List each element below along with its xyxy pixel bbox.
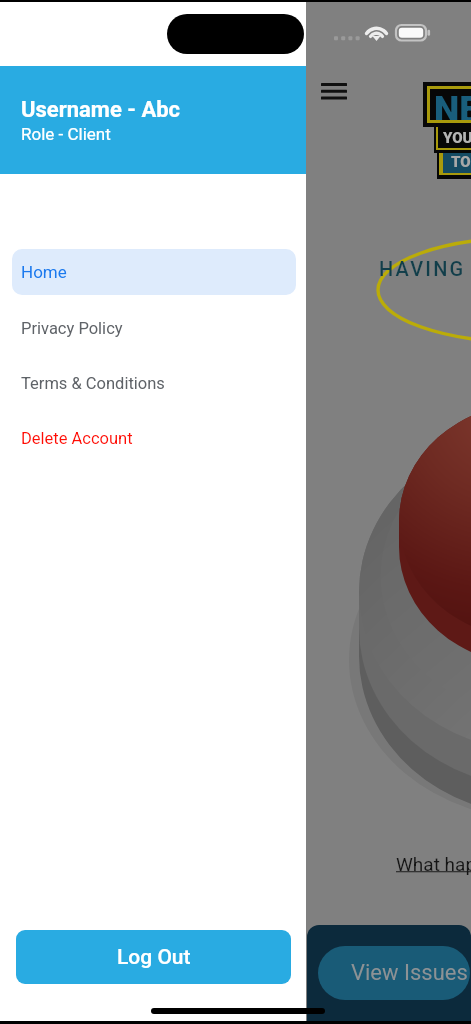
button[interactable]: Home [12, 249, 296, 295]
button[interactable]: Open navigation menu [316, 76, 352, 106]
staticText: Terms & Conditions [21, 374, 165, 393]
staticText: Role - Client [21, 124, 111, 144]
staticText: HAVING [379, 257, 466, 280]
button[interactable]: Delete Account [0, 411, 306, 466]
staticText: Home [21, 262, 67, 282]
staticText: Username - Abc [21, 97, 181, 123]
staticText: What happened? [396, 853, 471, 875]
button[interactable]: Terms & Conditions [0, 356, 306, 411]
staticText: NE [434, 89, 471, 120]
button[interactable]: View Issues [318, 946, 470, 1000]
button[interactable]: Log Out [16, 930, 291, 984]
staticText: Log Out [117, 945, 191, 970]
staticText: View Issues [351, 960, 468, 986]
staticText: TO [451, 153, 471, 171]
button[interactable]: Privacy Policy [0, 301, 306, 356]
staticText: Delete Account [21, 429, 133, 448]
staticText: YOU [443, 129, 471, 147]
staticText: Privacy Policy [21, 319, 123, 338]
